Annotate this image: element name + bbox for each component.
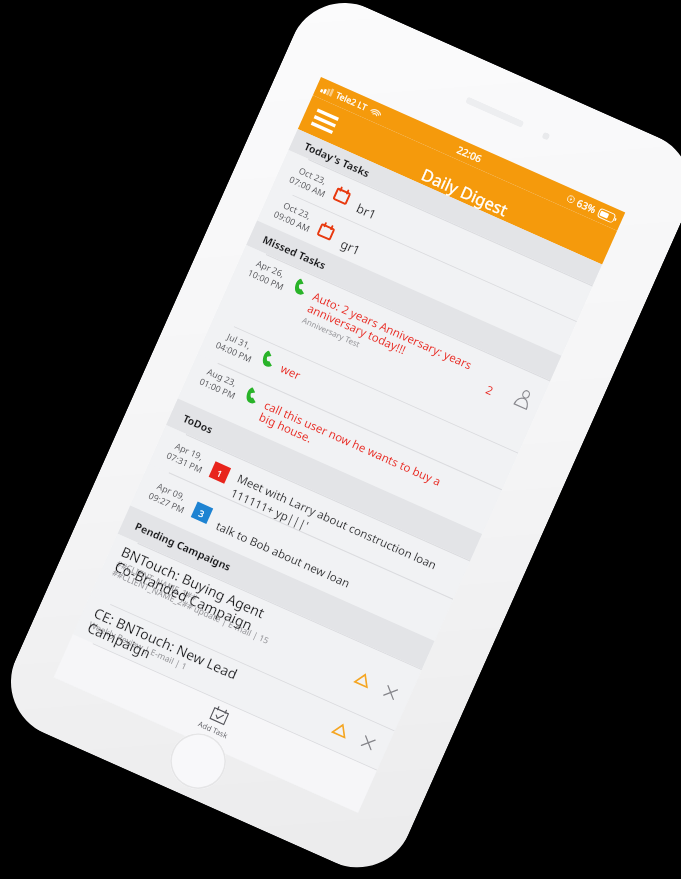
staticText: Tele2 LT xyxy=(334,89,370,114)
button[interactable] xyxy=(54,634,377,813)
button[interactable]: Oct 23, xyxy=(273,150,593,321)
button[interactable]: Auto: 2 years Anniversary: years anniver… xyxy=(214,245,550,453)
button[interactable]: Oct 23, xyxy=(257,186,577,356)
staticText: BNTouch: Buying Agent Co-Branded Campaig… xyxy=(112,542,283,644)
staticText: gr1 xyxy=(338,235,364,259)
button[interactable]: br1 xyxy=(273,150,593,321)
staticText: 1 xyxy=(215,466,225,480)
button[interactable]: call this user now he wants to buy a big… xyxy=(178,354,502,534)
staticText: 63% xyxy=(574,196,598,217)
staticText: 09:27 PM xyxy=(147,490,187,516)
staticText: wer xyxy=(278,361,304,384)
button[interactable]: Menu xyxy=(298,95,617,264)
staticText: 07:31 PM xyxy=(164,449,205,476)
staticText: Meet with Larry about construction loan xyxy=(234,470,439,573)
staticText: 01:00 PM xyxy=(197,375,238,402)
button[interactable]: CE: BNTouch: New Lead Campaign xyxy=(73,595,395,770)
button[interactable]: Apr 26, xyxy=(214,245,550,453)
staticText: Jul 31, xyxy=(225,331,253,352)
staticText: 07:00 AM xyxy=(287,174,328,200)
button[interactable]: Aug 23, xyxy=(178,354,502,534)
staticText: 04:00 PM xyxy=(214,339,254,366)
staticText: Auto: 2 years Anniversary: years anniver… xyxy=(305,288,496,395)
staticText: Apr 26, xyxy=(254,257,287,281)
button[interactable]: Warning xyxy=(353,670,373,690)
button[interactable]: Weekly Review | E-mail | 1 xyxy=(73,595,395,770)
button[interactable]: talk to Bob about new loan xyxy=(130,463,453,641)
staticText: CE: BNTouch: New Lead Campaign xyxy=(85,603,256,705)
staticText: ToDos xyxy=(181,411,216,437)
staticText: 10:00 PM xyxy=(246,267,286,294)
button[interactable]: Apr 19, xyxy=(149,425,470,599)
staticText: talk to Bob about new loan xyxy=(213,518,352,592)
button[interactable]: BNTouch: Buying Agent Co-Branded Campaig… xyxy=(90,534,422,730)
staticText: Today's Tasks xyxy=(302,139,373,181)
button[interactable]: Apr 09, xyxy=(130,463,453,641)
staticText: Aug 23, xyxy=(205,366,239,390)
button[interactable]: Warning xyxy=(331,720,350,740)
button[interactable]: Jul 31, xyxy=(198,317,518,489)
staticText: Weekly Review | E-mail | 1 xyxy=(87,619,249,699)
staticText: 22:06 xyxy=(455,142,484,166)
button[interactable]: Meet with Larry about construction loan xyxy=(149,425,470,599)
button[interactable]: ##CLIENT_NAME_1## ##CLIENT_NAME_2## upda… xyxy=(90,534,422,730)
button[interactable]: Daily Digest xyxy=(298,95,617,264)
button[interactable]: Dismiss xyxy=(381,683,400,702)
staticText: br1 xyxy=(354,200,380,224)
staticText: 111111+ yp|||' xyxy=(228,485,311,534)
staticText: Add Task xyxy=(197,718,230,741)
button[interactable]: gr1 xyxy=(257,186,577,356)
staticText: Apr 09, xyxy=(155,480,187,504)
button[interactable]: wer xyxy=(198,317,518,489)
button[interactable]: Add Task xyxy=(54,634,377,813)
staticText: Pending Campaigns xyxy=(133,519,233,574)
staticText: call this user now he wants to buy a big… xyxy=(256,397,447,503)
staticText: Oct 23, xyxy=(281,199,313,222)
staticText: Missed Tasks xyxy=(260,232,328,272)
staticText: 09:00 AM xyxy=(272,208,312,235)
button[interactable]: Dismiss xyxy=(359,733,378,752)
staticText: Daily Digest xyxy=(418,163,512,221)
button[interactable]: Menu xyxy=(311,108,339,134)
staticText: 3 xyxy=(197,507,207,520)
staticText: Anniversary Test xyxy=(301,314,362,349)
staticText: Oct 23, xyxy=(297,165,328,187)
staticText: Apr 19, xyxy=(173,440,205,463)
staticText: ##CLIENT_NAME_1## ##CLIENT_NAME_2## upda… xyxy=(111,557,276,646)
